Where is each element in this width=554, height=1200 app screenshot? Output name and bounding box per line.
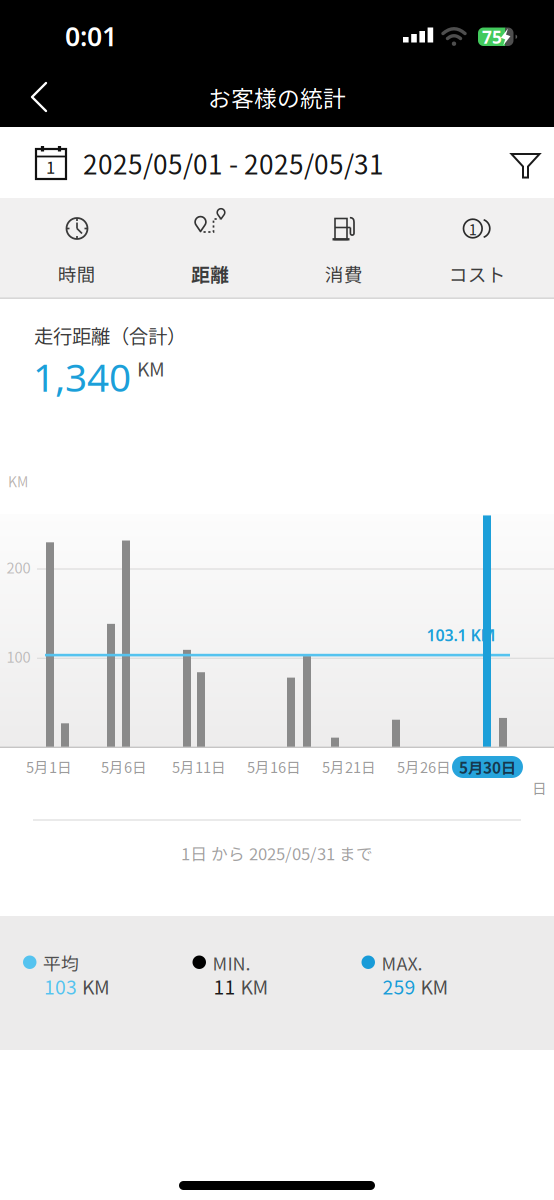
staticText: MAX. [381, 949, 422, 976]
staticText: 1日 から 2025/05/31 まで [181, 841, 373, 865]
staticText: KM [420, 972, 448, 1000]
staticText: MIN. [212, 949, 250, 976]
staticText: 2025/05/01 - 2025/05/31 [83, 144, 384, 182]
staticText: 5月6日 [101, 756, 147, 777]
staticText: 5月21日 [322, 756, 376, 777]
staticText: 1 [46, 154, 55, 178]
staticText: 200 [6, 556, 30, 578]
staticText: お客様の統計 [208, 81, 346, 113]
button[interactable]: Filter [490, 130, 554, 201]
button[interactable]: 1 [410, 198, 544, 298]
staticText: 日 [532, 777, 547, 798]
button[interactable]: 1 [0, 127, 460, 198]
button[interactable]: Back [9, 67, 69, 127]
staticText: 5月26日 [397, 756, 451, 777]
staticText: KM [8, 471, 28, 491]
staticText: 走行距離（合計） [34, 321, 186, 349]
staticText: 消費 [325, 260, 363, 287]
staticText: 距離 [191, 260, 229, 287]
staticText: 1,340 [33, 351, 131, 402]
staticText: 259 [382, 972, 415, 1000]
staticText: KM [82, 972, 110, 1000]
staticText: 5月1日 [26, 756, 72, 777]
staticText: 5月11日 [172, 756, 226, 777]
staticText: 100 [6, 646, 30, 667]
staticText: 103 [44, 972, 77, 1000]
staticText: KM [240, 972, 268, 1000]
staticText: 1 [469, 218, 477, 239]
button[interactable]: 時間 [10, 198, 143, 298]
staticText: 5月30日 [459, 756, 516, 778]
staticText: 時間 [58, 260, 96, 287]
staticText: 0:01 [65, 18, 117, 54]
button[interactable]: 消費 [277, 198, 410, 298]
staticText: 11 [213, 972, 235, 1000]
staticText: KM [137, 354, 165, 382]
button[interactable]: 5月30日 [452, 756, 523, 778]
staticText: 75 [482, 25, 502, 48]
button[interactable]: 距離 [143, 198, 277, 298]
staticText: 103.1 KM [426, 624, 495, 646]
staticText: 5月16日 [247, 756, 301, 777]
staticText: コスト [449, 260, 506, 287]
staticText: 平均 [43, 949, 79, 976]
